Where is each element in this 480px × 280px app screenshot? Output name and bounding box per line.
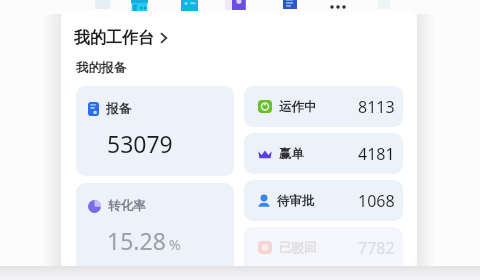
staticText: 我的工作台	[74, 28, 154, 48]
button[interactable]: Document	[283, 0, 297, 9]
staticText: %	[169, 235, 181, 254]
button[interactable]: Shop	[131, 0, 148, 11]
staticText: 我的报备	[76, 60, 126, 76]
staticText: 4181	[358, 143, 395, 165]
staticText: 运作中	[279, 99, 317, 115]
button[interactable]: 已驳回	[244, 227, 403, 266]
button[interactable]: 报备	[76, 86, 234, 176]
button[interactable]: More	[329, 0, 351, 14]
staticText: 15.28	[107, 225, 166, 256]
staticText: 7782	[358, 237, 395, 259]
staticText: 报备	[106, 101, 131, 117]
staticText: 待审批	[277, 193, 315, 209]
button[interactable]: 运作中	[244, 86, 403, 127]
staticText: 53079	[107, 128, 173, 159]
button[interactable]: 赢单	[244, 133, 403, 174]
staticText: 1068	[358, 190, 395, 212]
staticText: 已驳回	[279, 240, 317, 256]
button[interactable]: Search	[232, 0, 247, 10]
button[interactable]: 待审批	[244, 180, 403, 221]
staticText: 赢单	[279, 146, 304, 162]
button[interactable]: Card	[181, 0, 198, 12]
staticText: 转化率	[108, 198, 146, 214]
button[interactable]: 我的工作台	[74, 28, 168, 48]
staticText: 8113	[358, 96, 395, 118]
button[interactable]: 转化率	[76, 183, 234, 266]
